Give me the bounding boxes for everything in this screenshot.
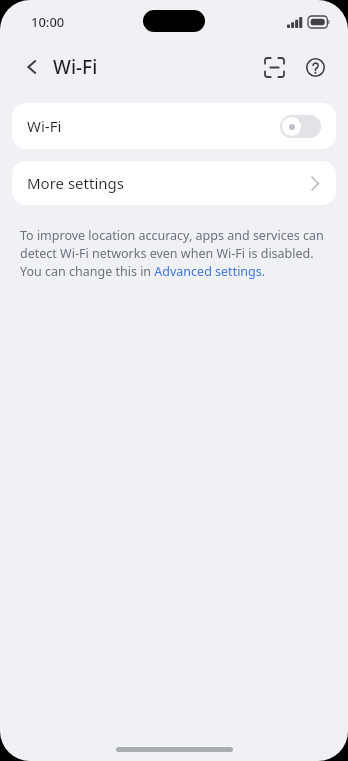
button[interactable]: Help [297,49,333,85]
staticText: Wi-Fi [53,54,98,80]
button[interactable]: Wi-Fi [12,103,336,149]
button[interactable]: Back [14,49,50,85]
staticText: 10:00 [31,13,65,31]
button[interactable]: Wi-Fi toggle [280,115,321,138]
staticText: To improve location accuracy, apps and s… [20,227,328,280]
button[interactable]: More settings [12,161,336,205]
button[interactable]: Scan QR code [256,49,292,85]
staticText: Wi-Fi [27,116,62,136]
staticText: More settings [27,173,124,193]
